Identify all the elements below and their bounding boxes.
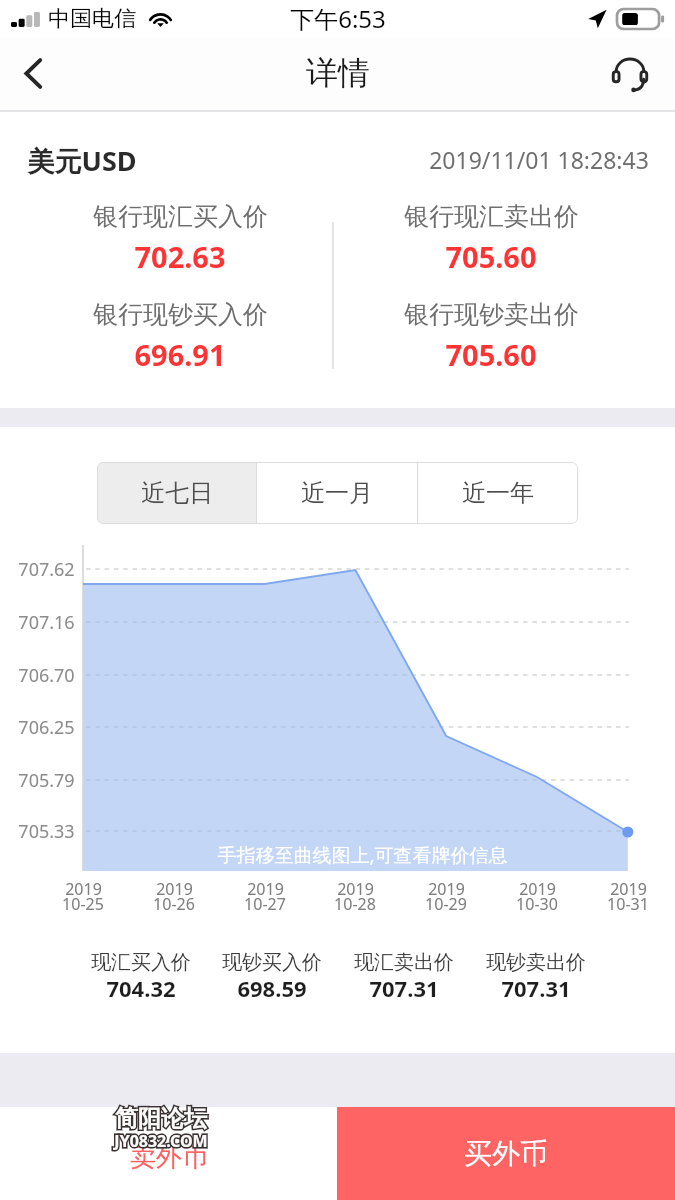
staticText: 简阳论坛 — [115, 1104, 207, 1133]
staticText: 2019 — [156, 878, 193, 900]
staticText: 中国电信 — [48, 5, 136, 33]
staticText: 近七日 — [141, 478, 213, 508]
staticText: 696.91 — [134, 335, 226, 374]
staticText: 美元USD — [27, 142, 137, 179]
staticText: 10-27 — [244, 893, 286, 915]
button[interactable]: Back — [0, 38, 66, 110]
staticText: 10-25 — [62, 893, 104, 915]
staticText: 702.63 — [134, 237, 226, 276]
staticText: 707.16 — [18, 610, 75, 635]
staticText: 买外币 — [464, 1136, 548, 1171]
button[interactable]: 买外币 — [337, 1107, 675, 1200]
staticText: 近一月 — [301, 478, 373, 508]
staticText: 2019 — [247, 878, 284, 900]
staticText: 698.59 — [237, 973, 307, 1003]
staticText: 卖外币 — [130, 1141, 208, 1174]
staticText: 现汇卖出价 — [354, 950, 454, 975]
staticText: 10-29 — [425, 893, 467, 915]
staticText: 银行现钞买入价 — [93, 299, 268, 330]
staticText: 10-31 — [607, 893, 649, 915]
button[interactable]: 卖外币 — [0, 1107, 337, 1200]
staticText: 下午6:53 — [290, 2, 386, 35]
staticText: 现钞卖出价 — [486, 950, 586, 975]
staticText: 2019 — [428, 878, 465, 900]
staticText: 705.60 — [445, 335, 537, 374]
staticText: 2019 — [519, 878, 556, 900]
staticText: 银行现汇卖出价 — [404, 201, 579, 232]
staticText: 707.31 — [369, 973, 439, 1003]
button[interactable]: 近一月 — [257, 462, 417, 524]
staticText: 10-28 — [334, 893, 376, 915]
staticText: 近一年 — [462, 478, 534, 508]
staticText: 707.62 — [18, 557, 75, 582]
staticText: 现钞买入价 — [222, 950, 322, 975]
staticText: 2019/11/01 18:28:43 — [429, 144, 649, 175]
staticText: 现汇买入价 — [91, 950, 191, 975]
staticText: JY0832.COM — [114, 1130, 208, 1152]
staticText: 银行现钞卖出价 — [404, 299, 579, 330]
staticText: 详情 — [306, 53, 370, 93]
staticText: 704.32 — [106, 973, 176, 1003]
staticText: 706.70 — [18, 663, 75, 688]
staticText: 706.25 — [18, 715, 75, 740]
staticText: 705.60 — [445, 237, 537, 276]
staticText: 707.31 — [501, 973, 571, 1003]
staticText: 手指移至曲线图上,可查看牌价信息 — [217, 842, 508, 866]
staticText: JY0832.COM — [114, 1130, 208, 1152]
staticText: 10-26 — [153, 893, 195, 915]
staticText: 简阳论坛 — [115, 1104, 207, 1133]
staticText: 2019 — [337, 878, 374, 900]
button[interactable]: 近一年 — [418, 462, 578, 524]
staticText: 2019 — [610, 878, 647, 900]
staticText: 2019 — [65, 878, 102, 900]
button[interactable]: 近七日 — [97, 462, 256, 524]
staticText: 705.79 — [18, 768, 75, 793]
staticText: 银行现汇买入价 — [93, 201, 268, 232]
staticText: 10-30 — [516, 893, 558, 915]
button[interactable]: Customer service — [597, 38, 675, 110]
staticText: 705.33 — [18, 819, 75, 844]
